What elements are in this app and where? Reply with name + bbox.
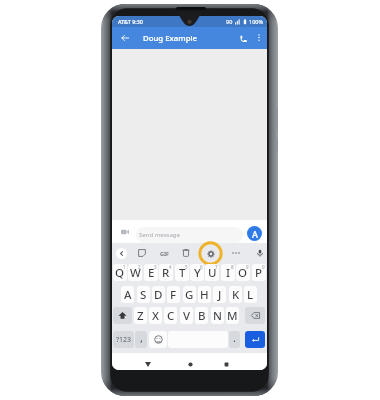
staticText: 4 (169, 264, 172, 270)
button[interactable]: R (159, 264, 173, 281)
button[interactable]: Account (247, 226, 262, 241)
button[interactable]: E (144, 264, 158, 281)
button[interactable]: GIF (156, 245, 172, 261)
button[interactable]: G (183, 286, 196, 303)
button[interactable]: More (229, 246, 243, 260)
staticText: . (233, 331, 236, 345)
staticText: V (183, 308, 191, 324)
button[interactable]: More options (252, 30, 266, 44)
button[interactable]: Backspace (245, 307, 265, 324)
button[interactable]: Q (113, 264, 127, 281)
button[interactable]: L (244, 286, 257, 303)
staticText: , (140, 331, 143, 345)
staticText: P (255, 265, 263, 281)
button[interactable]: Expand toolbar (116, 248, 127, 259)
staticText: L (247, 287, 254, 303)
staticText: Send message (139, 231, 180, 239)
button[interactable]: O (236, 264, 250, 281)
staticText: I (226, 265, 231, 281)
button[interactable]: I (221, 264, 235, 281)
staticText: GIF (160, 250, 169, 257)
button[interactable]: M (226, 307, 239, 324)
button[interactable]: D (152, 286, 165, 303)
button[interactable]: Enter (245, 331, 265, 348)
button[interactable]: F (167, 286, 180, 303)
button[interactable]: Navigate up (117, 30, 133, 46)
button[interactable]: Send message (136, 227, 243, 243)
button[interactable]: C (164, 307, 177, 324)
button[interactable]: X (149, 307, 162, 324)
staticText: Y (194, 265, 201, 281)
staticText: J (218, 287, 222, 303)
staticText: S (140, 287, 147, 303)
button[interactable]: W (128, 264, 142, 281)
button[interactable]: Clipboard (179, 246, 193, 260)
button[interactable]: Stickers (135, 246, 149, 260)
staticText: Z (137, 308, 144, 324)
staticText: 3 (154, 264, 157, 270)
staticText: 6 (200, 264, 203, 270)
button[interactable]: B (195, 307, 208, 324)
button[interactable]: Attach media (118, 225, 132, 239)
staticText: ?123 (116, 335, 132, 345)
button[interactable]: Y (190, 264, 204, 281)
staticText: K (232, 287, 240, 303)
staticText: U (208, 265, 217, 281)
staticText: 9 (246, 264, 249, 270)
button[interactable]: Period (229, 331, 240, 348)
staticText: 90 (226, 18, 233, 25)
staticText: E (148, 265, 155, 281)
button[interactable]: V (180, 307, 193, 324)
button[interactable]: U (205, 264, 219, 281)
staticText: Doug Example (143, 33, 198, 44)
staticText: 8 (231, 264, 234, 270)
staticText: B (198, 308, 206, 324)
staticText: O (238, 265, 248, 281)
staticText: Q (115, 265, 125, 281)
button[interactable]: S (137, 286, 150, 303)
button[interactable]: Z (134, 307, 147, 324)
staticText: A (124, 287, 132, 303)
button[interactable]: P (252, 264, 266, 281)
button[interactable]: Shift (113, 307, 132, 324)
button[interactable]: Voice input (253, 246, 267, 260)
button[interactable]: K (229, 286, 242, 303)
button[interactable]: H (198, 286, 211, 303)
staticText: F (170, 287, 177, 303)
staticText: AT&T 9:30 (118, 18, 143, 25)
staticText: 5 (185, 264, 188, 270)
button[interactable]: J (213, 286, 226, 303)
button[interactable]: Recent apps (218, 356, 234, 370)
staticText: 0 (262, 264, 265, 270)
staticText: W (130, 265, 141, 281)
button[interactable]: Keyboard settings (198, 241, 223, 266)
staticText: R (162, 265, 170, 281)
staticText: T (179, 265, 186, 281)
button[interactable]: A (121, 286, 134, 303)
staticText: 2 (138, 264, 141, 270)
staticText: H (200, 287, 209, 303)
staticText: C (167, 308, 175, 324)
staticText: N (213, 308, 222, 324)
button[interactable]: Back (140, 356, 156, 370)
staticText: X (152, 308, 160, 324)
staticText: D (154, 287, 163, 303)
button[interactable]: Emoji (149, 331, 167, 348)
button[interactable]: ?123 (113, 331, 134, 348)
staticText: G (185, 287, 194, 303)
staticText: A (252, 228, 258, 240)
button[interactable]: Comma (135, 331, 147, 348)
button[interactable]: T (175, 264, 189, 281)
staticText: M (227, 308, 238, 324)
staticText: 1 (123, 264, 126, 270)
button[interactable]: Call (235, 30, 251, 46)
staticText: 100% (249, 18, 264, 25)
button[interactable]: N (211, 307, 224, 324)
staticText: 7 (215, 264, 218, 270)
button[interactable]: Home (182, 356, 198, 370)
